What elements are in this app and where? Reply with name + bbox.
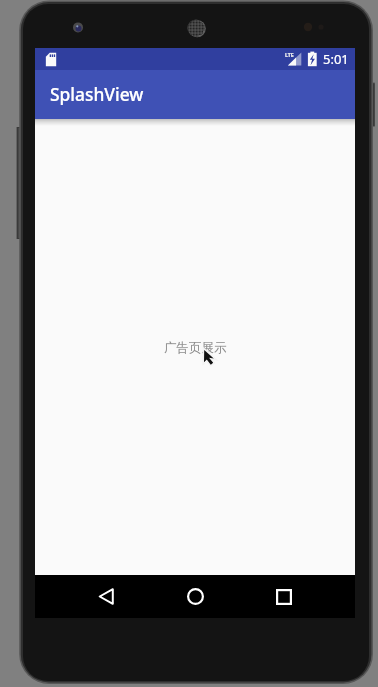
staticText: 广告页展示 (164, 340, 227, 356)
button[interactable]: Recents (255, 575, 313, 618)
staticText: SplashView (50, 82, 144, 106)
staticText: LTE (285, 51, 294, 58)
button[interactable]: Back (77, 575, 134, 618)
button[interactable]: Home (166, 575, 224, 618)
staticText: 5:01 (323, 50, 349, 68)
